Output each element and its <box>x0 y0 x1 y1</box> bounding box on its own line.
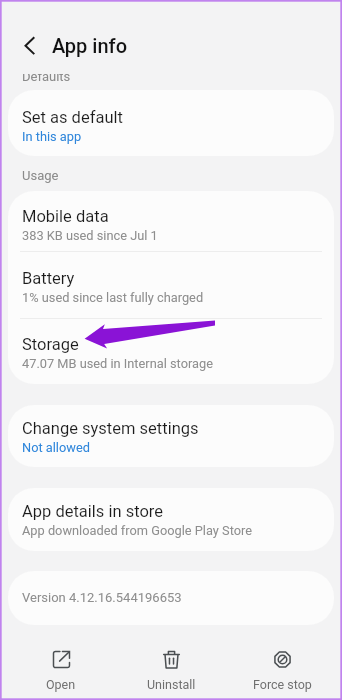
staticText: Change system settings <box>22 419 199 438</box>
staticText: Version 4.12.16.544196653 <box>22 590 182 605</box>
staticText: 47.07 MB used in Internal storage <box>22 356 213 371</box>
staticText: Battery <box>22 269 75 288</box>
button[interactable]: Navigate up <box>21 32 49 60</box>
staticText: App downloaded from Google Play Store <box>22 523 253 538</box>
staticText: 1% used since last fully charged <box>22 290 204 305</box>
staticText: Defaults <box>22 74 71 84</box>
button[interactable]: Battery <box>8 255 334 317</box>
staticText: Force stop <box>253 677 312 692</box>
staticText: Mobile data <box>22 207 109 226</box>
staticText: Storage <box>22 335 79 354</box>
staticText: App info <box>52 34 128 57</box>
button[interactable]: Open <box>17 637 105 700</box>
button[interactable]: Change system settings <box>8 405 334 467</box>
button[interactable]: Storage <box>8 321 334 383</box>
staticText: Open <box>46 677 76 692</box>
button[interactable]: Force stop <box>238 637 326 700</box>
staticText: 383 KB used since Jul 1 <box>22 228 158 243</box>
staticText: In this app <box>22 129 82 144</box>
button[interactable]: Uninstall <box>127 637 215 700</box>
button[interactable]: App details in store <box>8 488 334 551</box>
staticText: Uninstall <box>147 677 196 692</box>
button[interactable]: Set as default <box>8 90 334 156</box>
staticText: App details in store <box>22 502 164 521</box>
staticText: Not allowed <box>22 440 90 455</box>
button[interactable]: Mobile data <box>8 193 334 255</box>
staticText: Set as default <box>22 108 123 127</box>
staticText: Usage <box>22 168 59 183</box>
